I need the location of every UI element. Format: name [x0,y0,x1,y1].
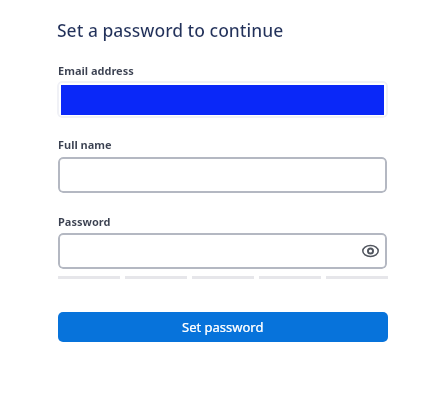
staticText: Full name [58,137,112,152]
staticText: Email address [58,63,134,78]
button[interactable] [58,157,387,193]
button[interactable] [57,81,388,118]
button[interactable] [58,233,387,269]
staticText: Set a password to continue [57,18,284,42]
staticText: Set password [182,318,264,336]
button[interactable]: Set password [58,312,388,342]
staticText: Password [58,214,111,229]
